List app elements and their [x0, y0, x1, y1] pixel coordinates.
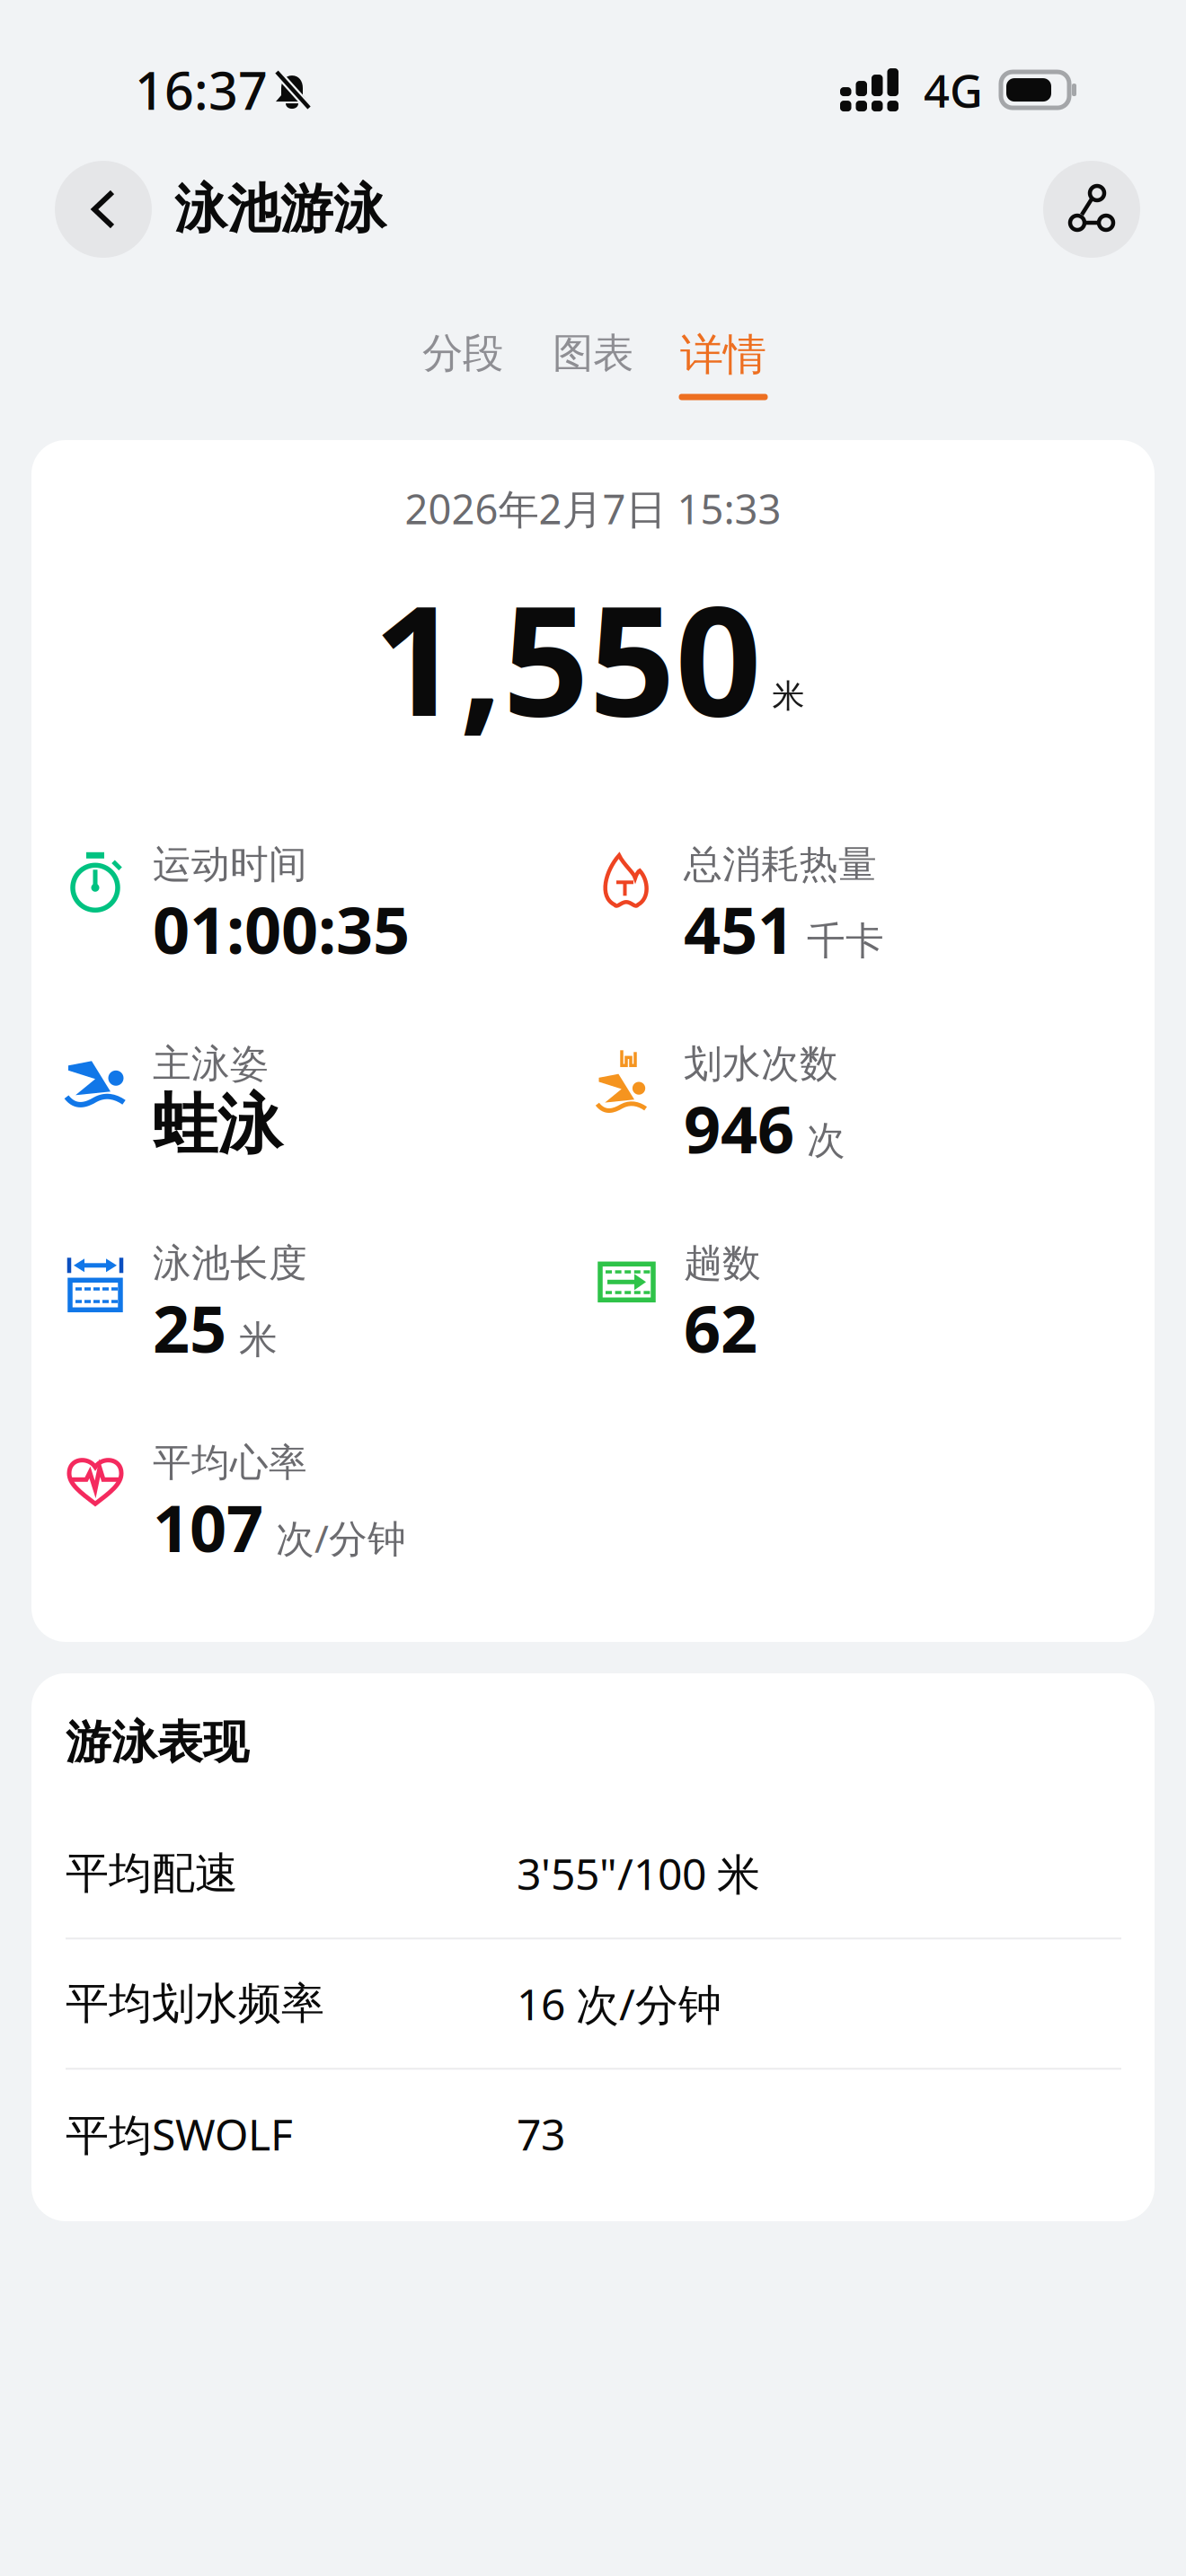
- staticText: 3'55"/100 米: [517, 1845, 760, 1902]
- staticText: 平均划水频率: [66, 1977, 324, 2030]
- staticText: 次/分钟: [276, 1512, 406, 1563]
- staticText: 游泳表现: [66, 1715, 249, 1771]
- staticText: 趟数: [684, 1240, 761, 1287]
- staticText: 平均SWOLF: [66, 2105, 293, 2162]
- staticText: 泳池长度: [153, 1240, 307, 1287]
- staticText: 平均心率: [153, 1439, 307, 1486]
- staticText: 千卡: [807, 918, 884, 965]
- staticText: 主泳姿: [153, 1040, 269, 1087]
- staticText: 73: [517, 2105, 565, 2162]
- staticText: 946: [684, 1085, 794, 1171]
- staticText: 平均配速: [66, 1847, 238, 1900]
- button[interactable]: 图表: [528, 328, 658, 400]
- staticText: 蛙泳: [153, 1085, 282, 1165]
- staticText: 分段: [422, 328, 503, 378]
- staticText: 米: [239, 1316, 278, 1363]
- staticText: 1,550: [373, 557, 761, 757]
- staticText: 总消耗热量: [684, 841, 877, 888]
- button[interactable]: 详情: [658, 328, 788, 400]
- staticText: 详情: [680, 328, 766, 381]
- staticText: 次: [807, 1117, 845, 1164]
- staticText: 划水次数: [684, 1040, 838, 1087]
- button[interactable]: Share: [1043, 161, 1140, 258]
- button[interactable]: 分段: [398, 328, 528, 400]
- staticText: 运动时间: [153, 841, 307, 888]
- staticText: 2026年2月7日 15:33: [405, 481, 781, 535]
- staticText: 米: [772, 676, 805, 716]
- staticText: 泳池游泳: [174, 177, 386, 242]
- staticText: 451: [684, 886, 794, 972]
- staticText: 107: [153, 1484, 263, 1570]
- staticText: 25: [153, 1285, 226, 1371]
- staticText: 01:00:35: [153, 886, 410, 972]
- staticText: 4G: [924, 60, 983, 120]
- staticText: 16 次/分钟: [517, 1975, 721, 2032]
- staticText: 62: [684, 1285, 757, 1371]
- staticText: 16:37: [135, 56, 268, 124]
- staticText: 图表: [553, 328, 633, 378]
- button[interactable]: Back: [55, 161, 152, 258]
